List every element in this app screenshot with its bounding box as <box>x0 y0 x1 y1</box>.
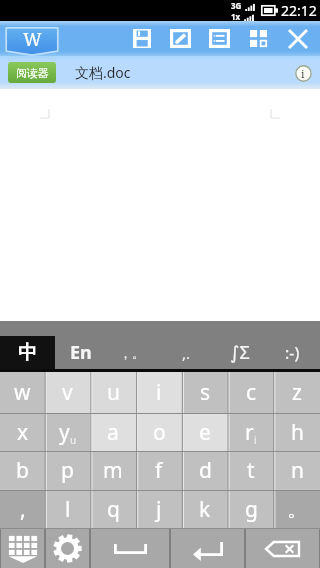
button[interactable]: u <box>90 372 136 414</box>
staticText: h <box>291 418 304 447</box>
staticText: s <box>200 378 211 407</box>
button[interactable]: Apps <box>239 21 278 56</box>
staticText: q <box>107 495 120 524</box>
staticText: z <box>292 378 302 407</box>
staticText: En <box>70 340 92 365</box>
staticText: 3G <box>231 0 242 11</box>
staticText: 文档.doc <box>75 63 131 82</box>
button[interactable]: t <box>228 452 274 491</box>
staticText: y <box>59 418 70 447</box>
staticText: g <box>245 495 258 524</box>
button[interactable]: En <box>55 336 106 369</box>
staticText: k <box>199 495 211 524</box>
button[interactable]: Save <box>122 21 161 56</box>
staticText: 22:12 <box>281 1 317 20</box>
staticText: f <box>155 456 163 485</box>
button[interactable]: g <box>228 491 274 529</box>
staticText: t <box>247 456 255 485</box>
staticText: ,. <box>182 343 191 363</box>
staticText: 。 <box>287 496 308 522</box>
staticText: 1x <box>231 11 241 21</box>
button[interactable]: Backspace <box>246 529 319 568</box>
staticText: d <box>199 456 212 485</box>
staticText: i <box>254 433 257 447</box>
button[interactable]: Switch keyboard <box>1 529 44 568</box>
staticText: e <box>199 418 211 447</box>
staticText: w <box>14 378 31 407</box>
button[interactable]: 。 <box>274 491 320 529</box>
staticText: m <box>103 456 123 485</box>
staticText: W <box>23 27 42 51</box>
staticText: o <box>153 418 166 447</box>
staticText: 中 <box>18 341 37 365</box>
staticText: u <box>107 378 120 407</box>
staticText: ∫Σ <box>230 340 250 365</box>
button[interactable]: e <box>182 414 228 452</box>
button[interactable]: k <box>182 491 228 529</box>
button[interactable]: v <box>45 372 90 414</box>
staticText: n <box>291 456 304 485</box>
staticText: 阅读器 <box>16 66 49 80</box>
staticText: , <box>20 495 26 524</box>
button[interactable]: z <box>274 372 320 414</box>
button[interactable]: ，。 <box>106 336 158 369</box>
button[interactable]: x <box>0 414 45 452</box>
button[interactable]: ,. <box>158 336 214 369</box>
staticText: :-) <box>285 342 300 364</box>
staticText: l <box>65 495 71 524</box>
button[interactable]: h <box>274 414 320 452</box>
staticText: ，。 <box>119 345 145 361</box>
button[interactable]: WPS Writer <box>5 27 59 56</box>
button[interactable]: Close <box>278 21 317 56</box>
button[interactable]: Space <box>91 529 169 568</box>
staticText: x <box>17 418 29 447</box>
button[interactable]: a <box>90 414 136 452</box>
button[interactable]: o <box>136 414 182 452</box>
button[interactable]: i <box>136 372 182 414</box>
button[interactable]: c <box>228 372 274 414</box>
staticText: v <box>62 378 73 407</box>
staticText: a <box>107 418 119 447</box>
button[interactable]: r <box>228 414 274 452</box>
staticText: i <box>156 378 162 407</box>
button[interactable]: 中 <box>0 336 55 369</box>
button[interactable]: ∫Σ <box>214 336 266 369</box>
button[interactable]: w <box>0 372 45 414</box>
staticText: u <box>70 433 77 447</box>
button[interactable]: n <box>274 452 320 491</box>
button[interactable]: 阅读器 <box>8 62 56 83</box>
button[interactable]: Outline <box>200 21 239 56</box>
staticText: j <box>156 495 162 524</box>
button[interactable]: q <box>90 491 136 529</box>
staticText: c <box>246 378 257 407</box>
button[interactable]: y <box>45 414 90 452</box>
staticText: b <box>16 456 29 485</box>
button[interactable]: Enter <box>171 529 244 568</box>
button[interactable]: b <box>0 452 45 491</box>
staticText: i <box>301 66 305 81</box>
button[interactable]: , <box>0 491 45 529</box>
staticText: r <box>245 418 254 447</box>
button[interactable]: d <box>182 452 228 491</box>
button[interactable]: f <box>136 452 182 491</box>
button[interactable]: m <box>90 452 136 491</box>
button[interactable]: Info <box>290 60 316 86</box>
button[interactable]: Settings <box>46 529 89 568</box>
staticText: p <box>61 456 74 485</box>
button[interactable]: s <box>182 372 228 414</box>
button[interactable]: Edit <box>161 21 200 56</box>
button[interactable]: j <box>136 491 182 529</box>
button[interactable]: :-) <box>266 336 318 369</box>
button[interactable]: l <box>45 491 90 529</box>
button[interactable]: p <box>45 452 90 491</box>
